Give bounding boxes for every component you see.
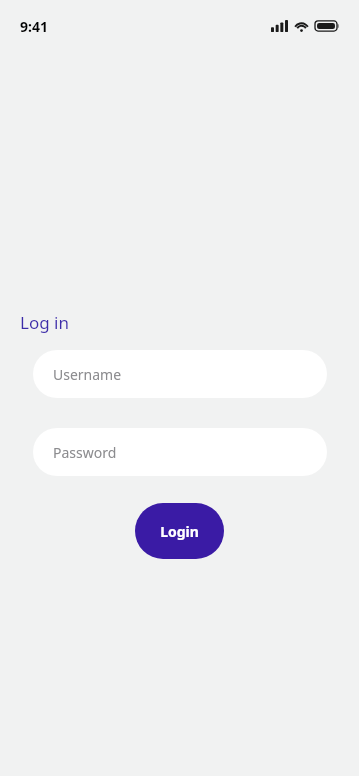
button[interactable]: Password [33, 428, 327, 476]
button[interactable]: Login [135, 503, 224, 559]
other: Battery [315, 20, 340, 32]
staticText: Password [53, 443, 117, 462]
staticText: Username [53, 365, 122, 384]
button[interactable]: Username [33, 350, 327, 398]
staticText: Login [160, 522, 199, 541]
staticText: 9:41 [20, 17, 48, 36]
other: Wi-Fi [294, 20, 309, 32]
other: Cellular signal [271, 20, 288, 32]
staticText: Log in [20, 311, 69, 334]
